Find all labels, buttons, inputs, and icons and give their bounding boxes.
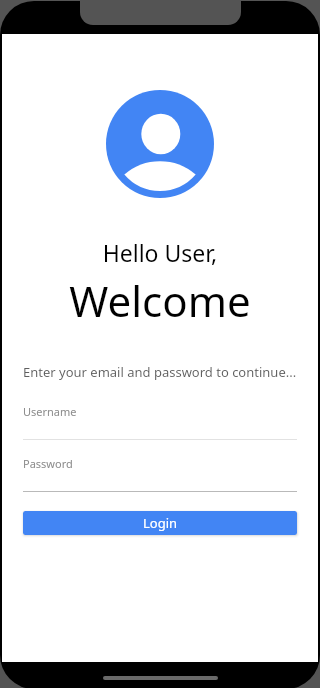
staticText: Hello User, <box>2 237 318 268</box>
staticText: Enter your email and password to continu… <box>23 363 297 381</box>
staticText: Welcome <box>2 272 318 329</box>
button[interactable]: Login <box>23 511 297 535</box>
staticText: Login <box>143 514 178 532</box>
button[interactable]: Username <box>23 404 297 440</box>
staticText: Username <box>23 404 77 419</box>
staticText: Password <box>23 456 73 471</box>
button[interactable]: Password <box>23 456 297 492</box>
